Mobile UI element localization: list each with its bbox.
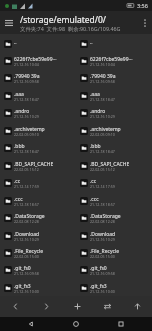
staticText: 22-02-05 15:00	[90, 254, 115, 259]
staticText: 21-12-16 10:29	[14, 114, 39, 119]
button[interactable]: .git_fs0	[76, 261, 152, 278]
button[interactable]: Back	[17, 317, 45, 331]
staticText: 21-12-16 09:58	[14, 271, 39, 276]
button[interactable]: .Download	[0, 227, 76, 244]
button[interactable]: .aaa	[0, 87, 76, 104]
staticText: .DataStorage	[14, 213, 45, 220]
button[interactable]: .DataStorage	[0, 209, 76, 226]
button[interactable]: .File_Recycle	[76, 244, 152, 261]
button[interactable]: 6226f7cbe59e99···	[0, 52, 76, 69]
staticText: 21-12-18 18:47	[90, 97, 115, 102]
staticText: .File_Recycle	[14, 248, 43, 255]
button[interactable]: .Download	[76, 227, 152, 244]
staticText: .Download	[90, 231, 116, 238]
button[interactable]: Back	[0, 296, 31, 317]
staticText: 21-12-16 10:00	[90, 289, 115, 294]
button[interactable]: Home	[62, 317, 90, 331]
button[interactable]: .git_fs0	[0, 261, 76, 278]
button[interactable]: .archivetemp	[76, 122, 152, 139]
staticText: .79940 39a	[90, 73, 116, 80]
button[interactable]: Recents	[107, 317, 135, 331]
button[interactable]: .bbb	[76, 139, 152, 156]
staticText: .File_Recycle	[90, 248, 119, 255]
button[interactable]: .ccc	[76, 192, 152, 209]
staticText: .cc	[90, 178, 97, 185]
staticText: 3:56	[137, 2, 148, 9]
button[interactable]: Forward	[31, 296, 62, 317]
button[interactable]: Open navigation menu	[0, 11, 18, 34]
button[interactable]: .archivetemp	[0, 122, 76, 139]
button[interactable]: Transfer	[92, 296, 122, 317]
button[interactable]: .79940 39a	[76, 69, 152, 86]
button[interactable]: .DataStorage	[76, 209, 152, 226]
staticText: 21-12-18 18:57	[90, 202, 115, 207]
staticText: 21-12-18 18:47	[14, 149, 39, 154]
staticText: 21-12-14 17:59	[90, 184, 115, 189]
staticText: .git_fs0	[14, 265, 31, 272]
staticText: ..	[14, 39, 17, 46]
button[interactable]: .cc	[76, 174, 152, 191]
staticText: 22-02-08 12:28	[90, 219, 115, 224]
button[interactable]: .ccc	[0, 192, 76, 209]
staticText: .Download	[14, 231, 40, 238]
staticText: 6226f7cbe59e99···	[90, 56, 133, 63]
staticText: 21-12-16 10:04	[90, 62, 115, 67]
staticText: 21-12-18 18:57	[14, 202, 39, 207]
staticText: .archivetemp	[90, 126, 121, 133]
staticText: ..	[90, 39, 93, 46]
staticText: .79940 39a	[14, 73, 40, 80]
button[interactable]: ..	[0, 35, 76, 52]
button[interactable]: .andro	[76, 104, 152, 121]
staticText: .cc	[14, 178, 21, 185]
staticText: .andro	[90, 108, 106, 115]
staticText: 22-02-05 15:12	[14, 167, 39, 172]
staticText: .aaa	[14, 91, 24, 98]
staticText: 21-12-16 10:29	[14, 237, 39, 242]
staticText: .bbb	[14, 143, 25, 150]
staticText: 21-12-16 10:04	[14, 62, 39, 67]
staticText: .DataStorage	[90, 213, 121, 220]
button[interactable]: .git_fs3	[76, 279, 152, 296]
staticText: .aaa	[90, 91, 100, 98]
staticText: 22-02-05 09:10	[90, 132, 115, 137]
staticText: .ccc	[90, 196, 99, 203]
staticText: 21-12-16 10:29	[90, 114, 115, 119]
staticText: 21-12-14 17:59	[14, 184, 39, 189]
button[interactable]: .bbb	[0, 139, 76, 156]
button[interactable]: .File_Recycle	[0, 244, 76, 261]
staticText: .ccc	[14, 196, 23, 203]
staticText: 文件夹:74 文件:98 剩余:90.16G/109.46G	[20, 25, 121, 32]
button[interactable]: 6226f7cbe59e99···	[76, 52, 152, 69]
button[interactable]: .cc	[0, 174, 76, 191]
button[interactable]: Up	[122, 296, 152, 317]
button[interactable]: More options	[138, 11, 152, 34]
staticText: 22-02-05 09:10	[14, 132, 39, 137]
staticText: 21-12-16 09:58	[90, 79, 115, 84]
staticText: /storage/emulated/0/	[20, 14, 106, 26]
staticText: 22-02-08 12:28	[14, 219, 39, 224]
button[interactable]: .BD_SAPI_CACHE	[76, 157, 152, 174]
staticText: .BD_SAPI_CACHE	[90, 161, 130, 168]
staticText: .git_fs3	[90, 283, 107, 290]
staticText: .andro	[14, 108, 30, 115]
staticText: 21-12-18 18:47	[90, 149, 115, 154]
staticText: .bbb	[90, 143, 101, 150]
staticText: 6226f7cbe59e99···	[14, 56, 57, 63]
button[interactable]: .andro	[0, 104, 76, 121]
button[interactable]: .79940 39a	[0, 69, 76, 86]
button[interactable]: New folder	[62, 296, 92, 317]
staticText: 21-12-16 10:29	[90, 237, 115, 242]
button[interactable]: .aaa	[76, 87, 152, 104]
staticText: 21-12-16 09:58	[14, 79, 39, 84]
staticText: .git_fs3	[14, 283, 31, 290]
button[interactable]: ..	[76, 35, 152, 52]
staticText: 21-12-16 10:00	[14, 289, 39, 294]
staticText: 21-12-18 18:47	[14, 97, 39, 102]
staticText: .git_fs0	[90, 265, 107, 272]
button[interactable]: .BD_SAPI_CACHE	[0, 157, 76, 174]
staticText: 22-02-05 15:12	[90, 167, 115, 172]
staticText: 22-02-05 15:00	[14, 254, 39, 259]
staticText: .archivetemp	[14, 126, 45, 133]
staticText: 21-12-16 09:58	[90, 271, 115, 276]
button[interactable]: .git_fs3	[0, 279, 76, 296]
